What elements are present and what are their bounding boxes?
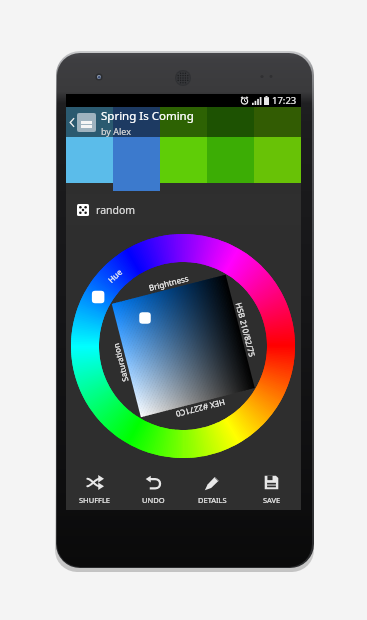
button[interactable]: SHUFFLE [66, 470, 124, 510]
button[interactable]: DETAILS [183, 470, 242, 510]
staticText: Spring Is Coming [101, 108, 194, 124]
staticText: SHUFFLE [79, 495, 111, 505]
staticText: random [96, 203, 136, 217]
button[interactable]: SAVE [242, 470, 301, 510]
button[interactable]: Back [66, 107, 77, 137]
staticText: DETAILS [198, 495, 227, 505]
staticText: UNDO [142, 495, 165, 505]
button[interactable]: random [66, 194, 301, 225]
staticText: 17:23 [272, 94, 297, 107]
button[interactable]: UNDO [124, 470, 183, 510]
staticText: by Alex [101, 125, 132, 137]
staticText: SAVE [263, 495, 281, 505]
